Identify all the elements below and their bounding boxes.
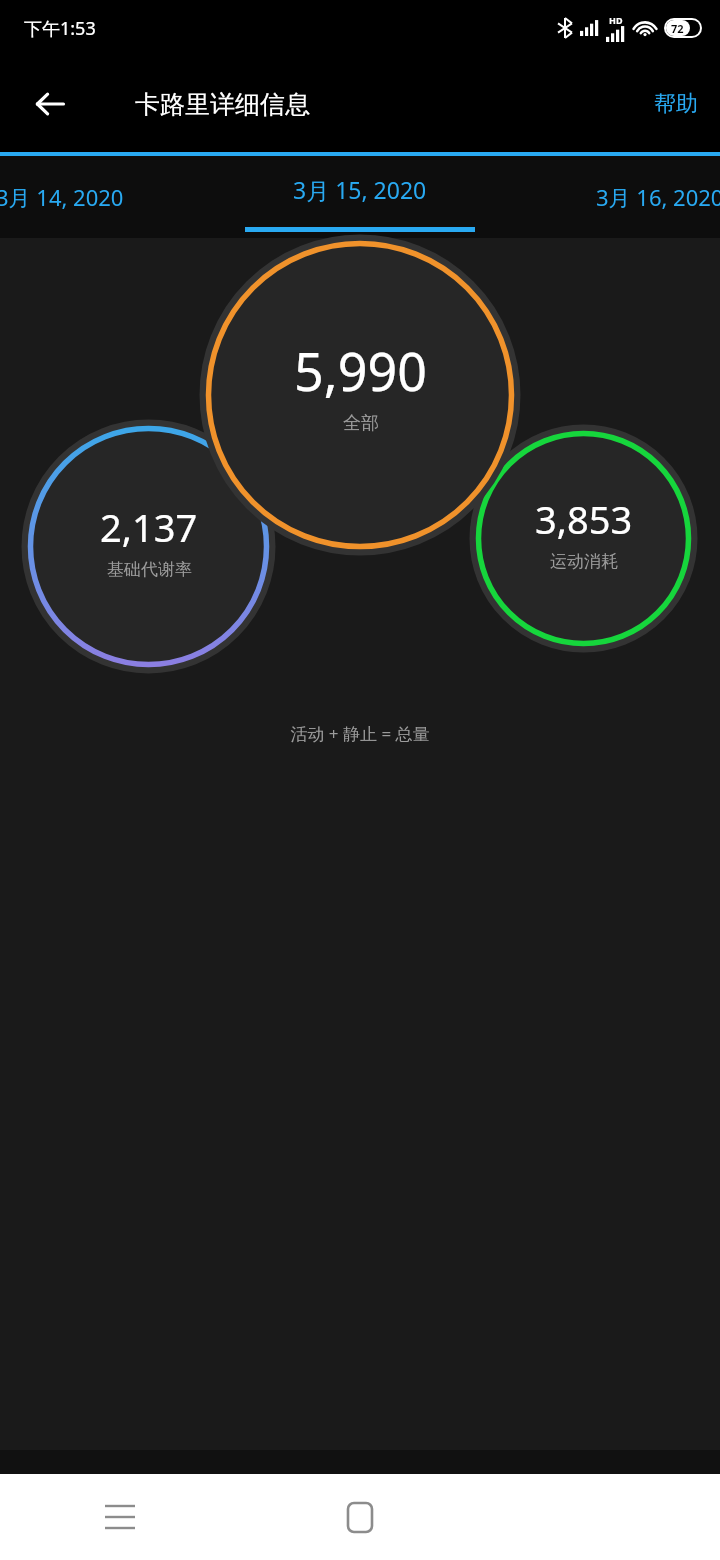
button[interactable]: 主屏幕	[240, 1474, 480, 1560]
staticText: 帮助	[654, 90, 698, 118]
button[interactable]: 3月 15, 2020	[230, 156, 490, 238]
staticText: 3月 14, 2020	[0, 182, 124, 212]
button[interactable]: 3月 14, 2020	[0, 156, 180, 238]
staticText: 3月 16, 2020	[596, 182, 720, 212]
staticText: 下午1:53	[24, 16, 96, 41]
button[interactable]: 5,990	[204, 239, 516, 551]
staticText: 活动 + 静止 = 总量	[0, 722, 720, 745]
button[interactable]: 2,137	[26, 424, 271, 669]
staticText: 72	[671, 21, 684, 36]
button[interactable]: 帮助	[654, 90, 698, 118]
button[interactable]: 3,853	[474, 429, 693, 648]
button[interactable]: 3月 16, 2020	[540, 156, 720, 238]
staticText: HD	[609, 14, 623, 26]
staticText: 基础代谢率	[107, 559, 192, 580]
button[interactable]: 最近任务	[0, 1474, 240, 1560]
staticText: 2,137	[100, 501, 198, 553]
staticText: 5,990	[294, 335, 427, 406]
staticText: 全部	[343, 412, 379, 435]
staticText: 3月 15, 2020	[293, 174, 427, 205]
staticText: 3,853	[535, 493, 633, 545]
staticText: 运动消耗	[550, 551, 618, 572]
button[interactable]: 返回	[18, 72, 82, 136]
staticText: 卡路里详细信息	[135, 89, 310, 120]
